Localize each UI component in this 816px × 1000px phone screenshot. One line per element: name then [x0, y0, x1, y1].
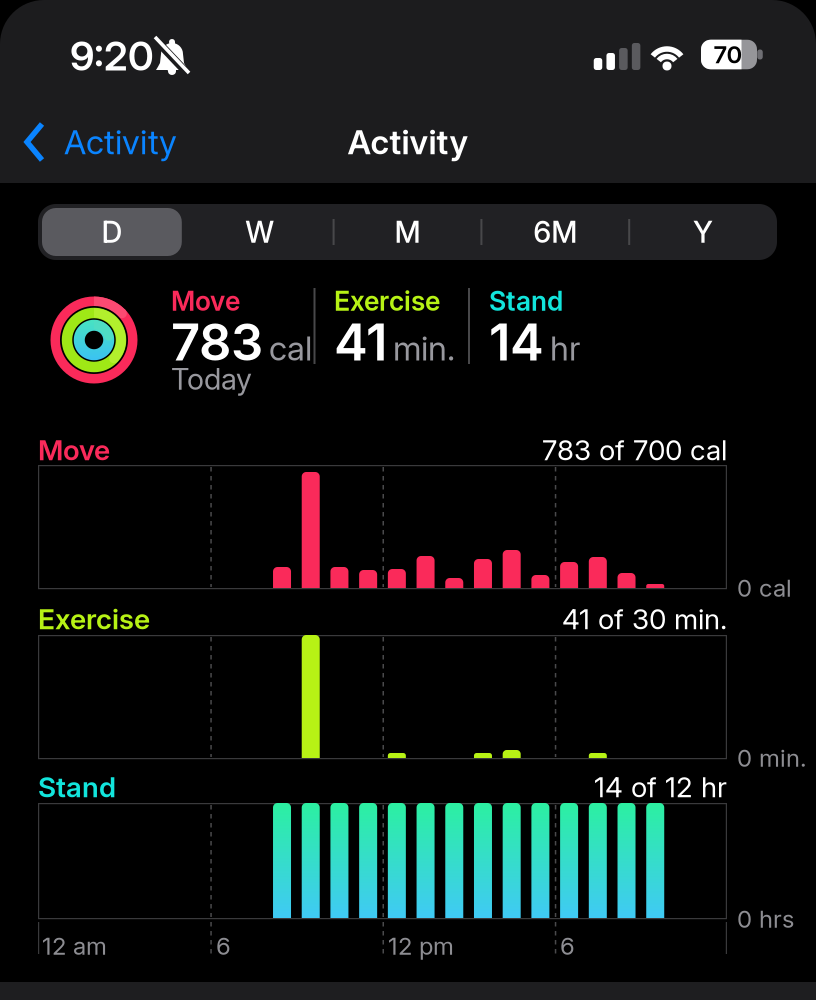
staticText: W [245, 215, 274, 249]
staticText: 6 [560, 932, 575, 960]
staticText: 14 of 12 hr [594, 770, 727, 803]
staticText: Exercise [334, 285, 440, 317]
staticText: 0 min. [737, 744, 807, 772]
staticText: 70 [713, 40, 742, 69]
staticText: 783 of 700 cal [542, 433, 727, 466]
button[interactable]: D [38, 204, 186, 260]
staticText: 41 [334, 312, 387, 372]
staticText: hr [550, 329, 580, 368]
staticText: Y [693, 215, 713, 249]
staticText: 12 pm [388, 932, 454, 960]
button[interactable]: M [334, 204, 481, 260]
staticText: 6 [216, 932, 231, 960]
staticText: min. [393, 329, 455, 368]
staticText: Stand [38, 770, 116, 803]
staticText: 6M [533, 215, 577, 249]
staticText: 783 [171, 312, 263, 372]
staticText: cal [269, 329, 312, 368]
staticText: 0 hrs [737, 905, 794, 933]
staticText: 41 of 30 min. [562, 602, 727, 635]
staticText: Move [38, 433, 110, 466]
staticText: Move [171, 285, 240, 317]
staticText: Exercise [38, 602, 150, 635]
button[interactable]: 6M [481, 204, 629, 260]
staticText: Activity [64, 122, 177, 162]
staticText: 12 am [42, 932, 107, 960]
staticText: 9:20 [70, 32, 154, 80]
button[interactable]: Y [629, 204, 777, 260]
staticText: 0 cal [737, 574, 792, 602]
staticText: Activity [347, 122, 468, 162]
staticText: Today [171, 362, 252, 396]
button[interactable]: Activity [24, 114, 224, 170]
button[interactable]: W [186, 204, 334, 260]
staticText: D [101, 215, 122, 249]
staticText: M [394, 215, 420, 249]
staticText: 14 [489, 312, 544, 372]
staticText: Stand [489, 285, 563, 317]
